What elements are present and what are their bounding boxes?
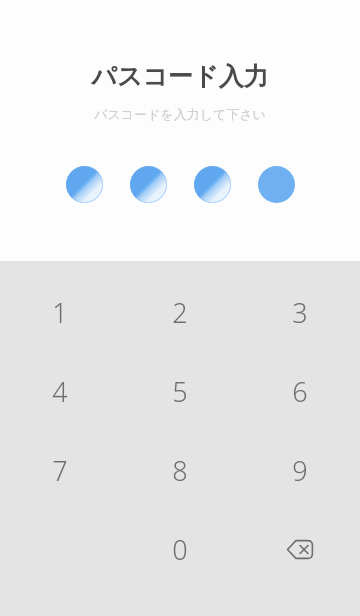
button[interactable]: 3 xyxy=(240,282,360,342)
staticText: 7 xyxy=(52,452,68,489)
staticText: パスコード入力 xyxy=(91,61,269,92)
staticText: 2 xyxy=(172,294,188,331)
button[interactable]: 2 xyxy=(120,282,240,342)
button[interactable]: 5 xyxy=(120,361,240,421)
button[interactable]: 7 xyxy=(0,440,120,500)
staticText: 9 xyxy=(292,452,308,489)
staticText: 5 xyxy=(172,373,188,410)
button[interactable]: 9 xyxy=(240,440,360,500)
staticText: 4 xyxy=(52,373,68,410)
staticText: 0 xyxy=(172,531,188,568)
button[interactable]: 6 xyxy=(240,361,360,421)
button[interactable]: 0 xyxy=(120,519,240,579)
button[interactable]: 4 xyxy=(0,361,120,421)
staticText: 6 xyxy=(292,373,308,410)
staticText: 3 xyxy=(292,294,308,331)
staticText: パスコードを入力して下さい xyxy=(94,106,266,122)
button[interactable]: 8 xyxy=(120,440,240,500)
staticText: 1 xyxy=(52,294,68,331)
button[interactable]: 1 xyxy=(0,282,120,342)
button[interactable]: Backspace xyxy=(240,519,360,579)
staticText: 8 xyxy=(172,452,188,489)
